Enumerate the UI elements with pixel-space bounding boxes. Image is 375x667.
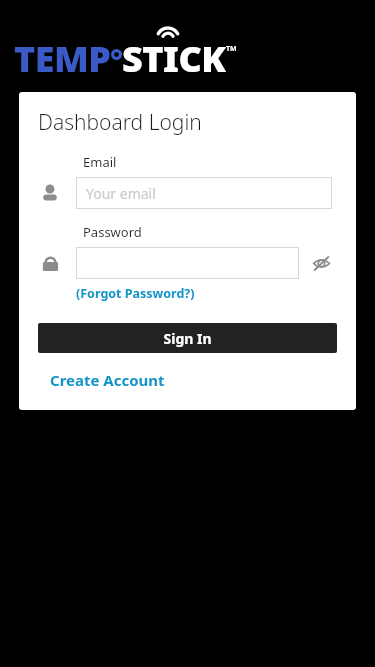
staticText: Your email [86, 184, 156, 203]
button[interactable]: Create Account [50, 370, 165, 390]
button[interactable]: Sign In [38, 323, 337, 353]
staticText: STICK [122, 34, 226, 76]
staticText: (Forgot Password?) [76, 285, 195, 302]
staticText: Dashboard Login [38, 108, 202, 137]
button[interactable] [76, 247, 299, 279]
staticText: Create Account [50, 370, 165, 390]
button[interactable]: Show password [309, 251, 333, 275]
staticText: Sign In [163, 329, 212, 348]
staticText: TM [226, 44, 237, 54]
button[interactable]: Your email [76, 177, 332, 209]
staticText: Password [83, 223, 142, 241]
staticText: Email [83, 153, 117, 171]
staticText: TEMP [14, 34, 111, 76]
button[interactable]: (Forgot Password?) [76, 285, 195, 302]
